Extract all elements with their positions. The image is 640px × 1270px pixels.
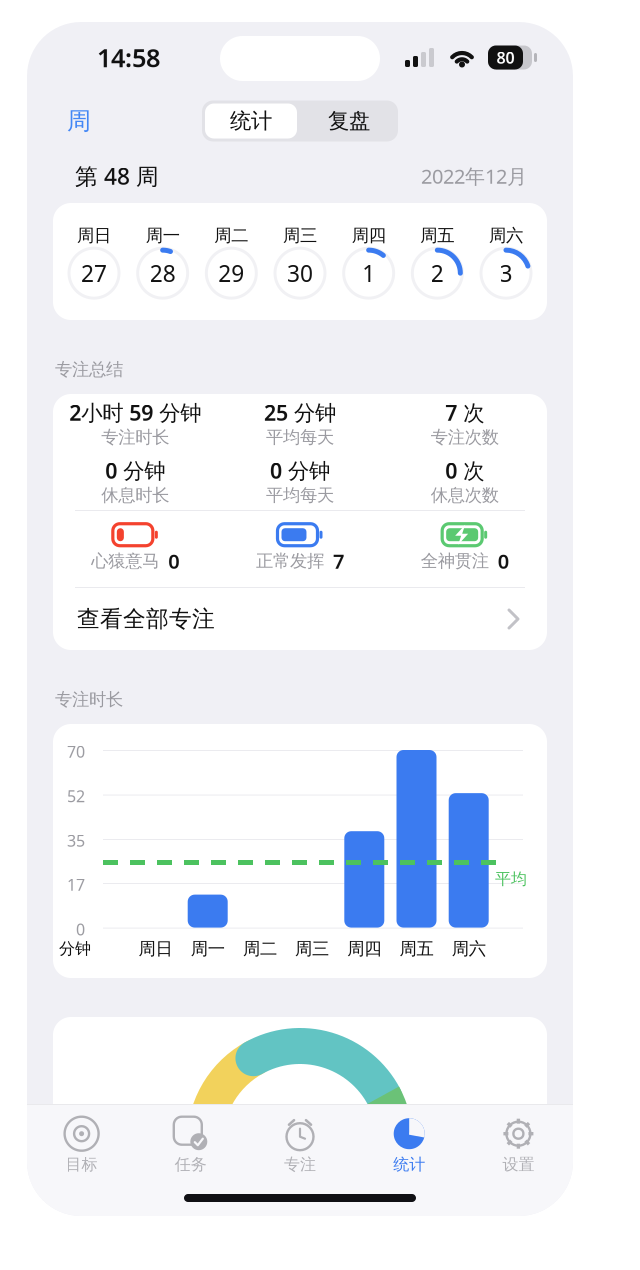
staticText: 周三 [283, 225, 317, 246]
button[interactable]: 设置 [464, 1105, 573, 1178]
staticText: 专注 [284, 1155, 316, 1174]
staticText: 周一 [191, 938, 225, 959]
staticText: 查看全部专注 [77, 605, 215, 633]
staticText: 35 [67, 830, 85, 851]
staticText: 平均 [495, 869, 527, 889]
staticText: 29 [218, 258, 244, 288]
button[interactable]: 统计 [202, 100, 300, 141]
staticText: 全神贯注 [421, 550, 489, 572]
staticText: 30 [287, 258, 313, 288]
staticText: 周五 [399, 938, 433, 959]
staticText: 52 [67, 785, 85, 807]
staticText: 周 [67, 106, 91, 136]
staticText: 周五 [420, 225, 454, 246]
staticText: 0 [168, 548, 179, 574]
staticText: 70 [67, 741, 85, 762]
staticText: 周六 [489, 225, 523, 246]
staticText: 14:58 [97, 41, 160, 74]
staticText: 2022年12月 [421, 163, 527, 189]
staticText: 2 [431, 258, 444, 288]
staticText: 任务 [175, 1155, 207, 1174]
staticText: 25 分钟 [264, 398, 336, 426]
staticText: 设置 [502, 1155, 534, 1174]
staticText: 2小时 59 分钟 [69, 398, 201, 426]
staticText: 0 分钟 [105, 456, 165, 484]
staticText: 1 [362, 258, 375, 288]
staticText: 0 次 [445, 456, 484, 484]
staticText: 周日 [138, 938, 172, 959]
staticText: 27 [81, 258, 107, 288]
staticText: 专注总结 [55, 359, 123, 380]
staticText: 周三 [295, 938, 329, 959]
staticText: 28 [150, 258, 176, 288]
staticText: 7 次 [445, 398, 484, 426]
button[interactable]: 查看全部专注 [53, 588, 547, 650]
staticText: 0 [76, 919, 85, 940]
button[interactable]: 目标 [27, 1105, 136, 1178]
staticText: 休息时长 [101, 484, 169, 506]
staticText: 专注时长 [55, 689, 123, 710]
staticText: 17 [67, 874, 85, 895]
staticText: 专注次数 [431, 426, 499, 448]
staticText: 7 [333, 548, 344, 574]
staticText: 第 48 周 [75, 161, 159, 191]
staticText: 分钟 [59, 939, 91, 958]
staticText: 心猿意马 [91, 550, 159, 572]
staticText: 周四 [347, 938, 381, 959]
staticText: 周六 [452, 938, 486, 959]
staticText: 周二 [243, 938, 277, 959]
button[interactable]: 任务 [136, 1105, 245, 1178]
staticText: 统计 [230, 108, 272, 134]
staticText: 平均每天 [266, 426, 334, 448]
staticText: 正常发挥 [256, 550, 324, 572]
staticText: 休息次数 [431, 484, 499, 506]
staticText: 周日 [77, 225, 111, 246]
staticText: 0 [498, 548, 509, 574]
staticText: 80 [496, 47, 514, 68]
staticText: 专注时长 [101, 426, 169, 448]
staticText: 周一 [146, 225, 180, 246]
button[interactable]: 专注 [245, 1105, 355, 1178]
staticText: 3 [499, 258, 512, 288]
button[interactable]: 复盘 [300, 100, 398, 141]
staticText: 周二 [214, 225, 248, 246]
staticText: 周四 [352, 225, 386, 246]
staticText: 平均每天 [266, 484, 334, 506]
button[interactable]: 周 [59, 98, 99, 144]
staticText: 目标 [66, 1155, 98, 1174]
staticText: 复盘 [328, 108, 370, 134]
button[interactable]: 统计 [355, 1105, 464, 1178]
staticText: 0 分钟 [270, 456, 330, 484]
staticText: 统计 [393, 1155, 425, 1174]
